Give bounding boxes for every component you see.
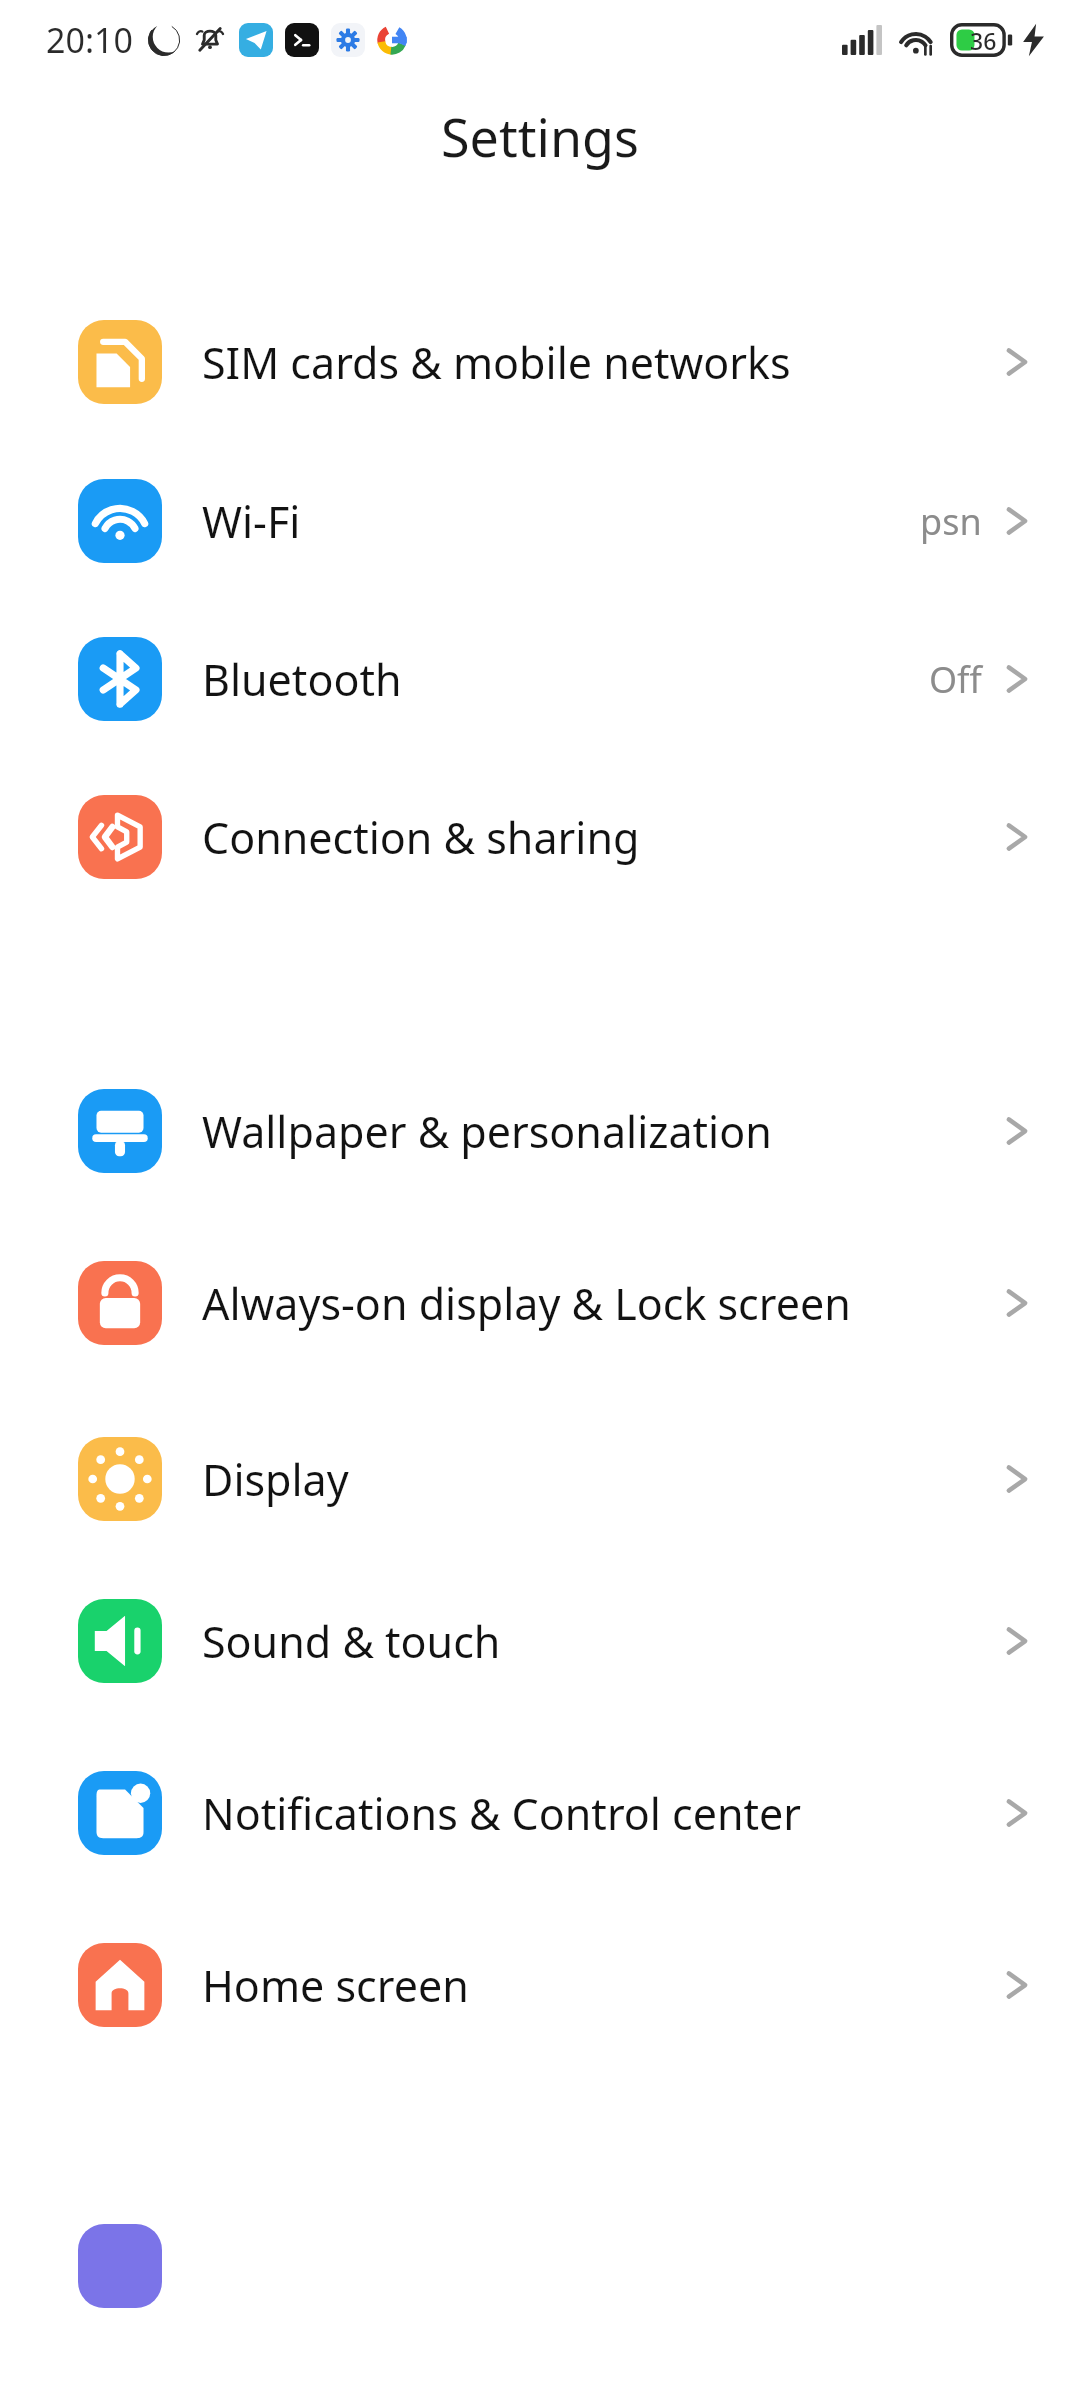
button[interactable]: Always-on display & Lock screen [0, 1210, 1080, 1396]
button[interactable]: Display [0, 1396, 1080, 1562]
staticText: Connection & sharing [202, 808, 976, 867]
staticText: 36 [970, 25, 997, 56]
staticText: psn [920, 497, 982, 546]
staticText: Bluetooth [202, 650, 905, 709]
button[interactable]: Notifications & Control center [0, 1720, 1080, 1906]
button[interactable]: Connection & sharing [0, 758, 1080, 916]
staticText: Off [929, 655, 982, 704]
staticText: Sound & touch [202, 1612, 976, 1671]
staticText: Settings [441, 101, 639, 172]
staticText: Notifications & Control center [202, 1784, 976, 1843]
staticText: 20:10 [46, 17, 133, 63]
staticText: Always-on display & Lock screen [202, 1274, 976, 1333]
button[interactable]: Bluetooth [0, 600, 1080, 758]
other: Additional settings [78, 2224, 162, 2308]
staticText: Wallpaper & personalization [202, 1102, 976, 1161]
button[interactable]: Additional settings [0, 2224, 1080, 2314]
button[interactable]: Sound & touch [0, 1562, 1080, 1720]
button[interactable]: Home screen [0, 1906, 1080, 2064]
button[interactable]: SIM cards & mobile networks [0, 282, 1080, 442]
staticText: Wi-Fi [202, 492, 896, 551]
staticText: Display [202, 1450, 976, 1509]
staticText: SIM cards & mobile networks [202, 333, 976, 392]
button[interactable]: Wi-Fi [0, 442, 1080, 600]
staticText: Home screen [202, 1956, 976, 2015]
button[interactable]: Wallpaper & personalization [0, 1052, 1080, 1210]
